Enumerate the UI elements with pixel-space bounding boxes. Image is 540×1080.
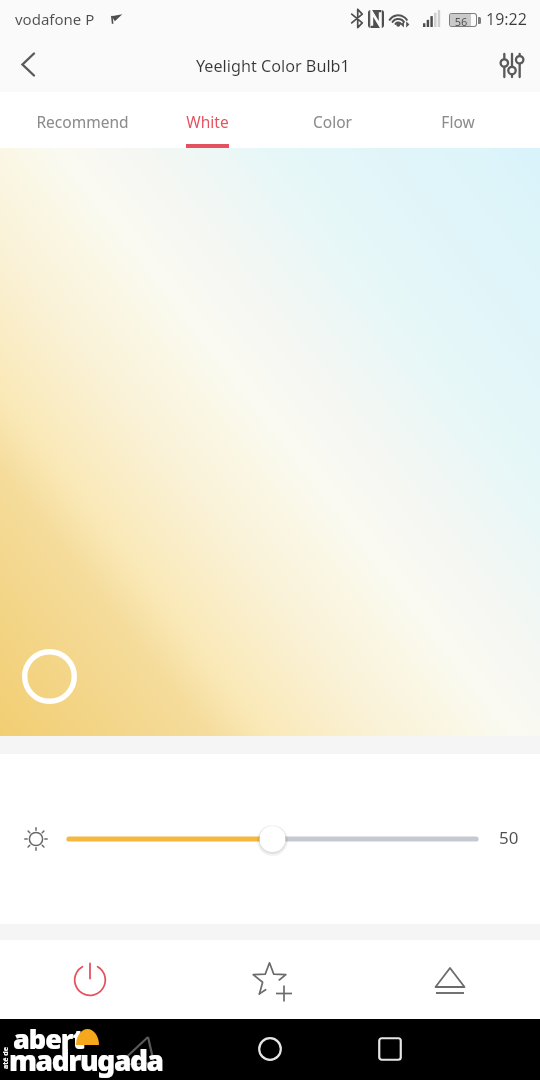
- button[interactable]: Color: [270, 92, 395, 148]
- button[interactable]: Home: [240, 1019, 300, 1080]
- staticText: Yeelight Color Bulb1: [196, 55, 350, 77]
- button[interactable]: Recommend: [20, 92, 145, 148]
- button[interactable]: Back: [120, 1019, 180, 1080]
- staticText: Color: [313, 111, 352, 132]
- staticText: Flow: [441, 111, 475, 132]
- button[interactable]: Add to favorites: [180, 940, 360, 1019]
- button[interactable]: Recents: [360, 1019, 420, 1080]
- button[interactable]: Eject: [360, 940, 540, 1019]
- staticText: White: [186, 111, 229, 132]
- staticText: até de: [1, 1047, 11, 1069]
- staticText: madrugada: [9, 1041, 163, 1079]
- button[interactable]: White: [145, 92, 270, 148]
- staticText: Recommend: [36, 111, 129, 132]
- button[interactable]: [0, 148, 540, 736]
- staticText: vodafone P: [15, 9, 95, 29]
- button[interactable]: Back: [0, 40, 56, 92]
- button[interactable]: Settings: [484, 40, 540, 92]
- staticText: 56: [450, 14, 474, 26]
- staticText: 19:22: [486, 8, 527, 30]
- button[interactable]: Power: [0, 940, 180, 1019]
- staticText: 50: [499, 826, 519, 849]
- staticText: abert: [13, 1020, 84, 1057]
- button[interactable]: Flow: [395, 92, 520, 148]
